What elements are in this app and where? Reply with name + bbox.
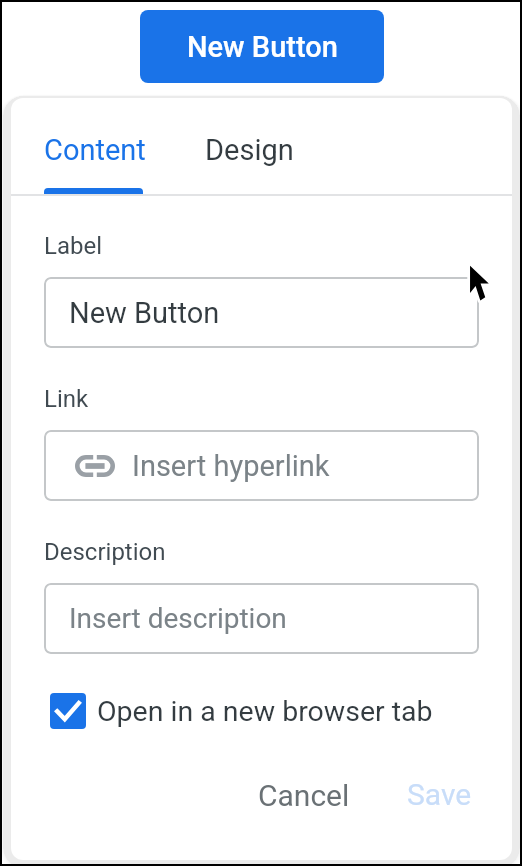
- button[interactable]: New Button: [44, 277, 479, 348]
- button[interactable]: Content: [37, 104, 153, 195]
- other: Mouse pointer: [469, 265, 495, 301]
- staticText: Cancel: [258, 778, 350, 813]
- button[interactable]: Cancel: [246, 769, 362, 821]
- staticText: Design: [205, 133, 294, 167]
- button[interactable]: Open in a new browser tab: [50, 688, 433, 734]
- button[interactable]: Design: [191, 104, 307, 195]
- button[interactable]: Insert description: [44, 583, 479, 654]
- staticText: Save: [407, 777, 472, 812]
- staticText: Link: [44, 385, 89, 413]
- staticText: Open in a new browser tab: [97, 695, 433, 728]
- button[interactable]: New Button: [140, 10, 384, 83]
- staticText: Insert description: [69, 602, 287, 635]
- button[interactable]: Save: [393, 768, 485, 820]
- staticText: Content: [44, 133, 146, 167]
- button[interactable]: Insert link: [44, 430, 479, 501]
- staticText: Description: [44, 538, 166, 566]
- staticText: Label: [44, 232, 103, 260]
- staticText: Insert hyperlink: [132, 449, 330, 483]
- staticText: New Button: [69, 296, 220, 330]
- other: Insert link: [75, 455, 115, 477]
- staticText: New Button: [187, 30, 338, 64]
